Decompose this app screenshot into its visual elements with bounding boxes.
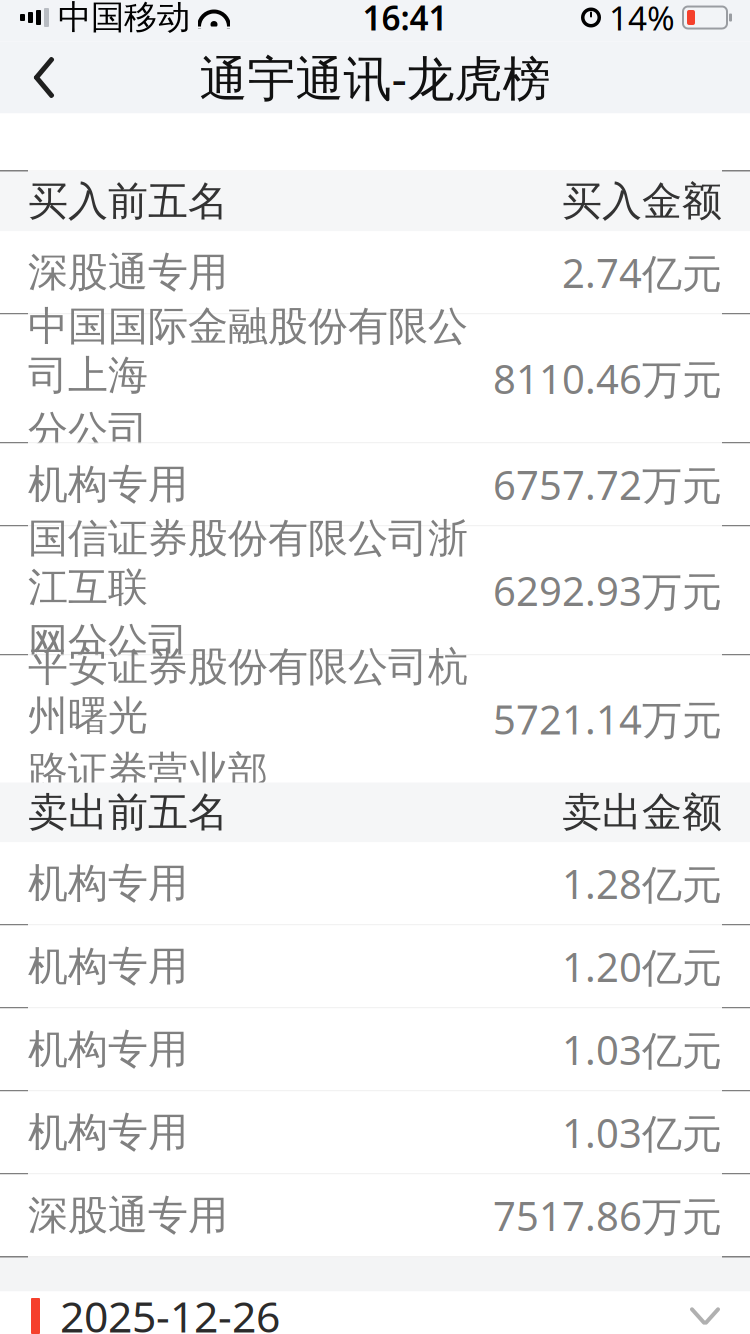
- button[interactable]: 国信证券股份有限公司浙江互联: [0, 526, 750, 654]
- button[interactable]: 平安证券股份有限公司杭州曙光: [0, 655, 750, 782]
- staticText: 深股通专用: [28, 248, 228, 297]
- staticText: 7517.86万元: [493, 1189, 722, 1242]
- staticText: 机构专用: [28, 942, 188, 991]
- staticText: 路证券营业部: [28, 747, 268, 796]
- button[interactable]: 机构专用: [0, 842, 750, 924]
- button[interactable]: 机构专用: [0, 925, 750, 1007]
- staticText: 1.03亿元: [562, 1023, 722, 1076]
- staticText: 16:41: [362, 0, 447, 40]
- staticText: 深股通专用: [28, 1191, 228, 1240]
- button[interactable]: 机构专用: [0, 443, 750, 525]
- staticText: 分公司: [28, 406, 148, 455]
- button[interactable]: 深股通专用: [0, 231, 750, 313]
- staticText: 通宇通讯-龙虎榜: [199, 46, 550, 109]
- staticText: 1.28亿元: [562, 857, 722, 910]
- staticText: 中国国际金融股份有限公司上海: [28, 302, 468, 400]
- staticText: 卖出前五名: [28, 788, 228, 837]
- staticText: 机构专用: [28, 1025, 188, 1074]
- button[interactable]: 返回: [9, 41, 79, 113]
- button[interactable]: 中国国际金融股份有限公司上海: [0, 314, 750, 442]
- button[interactable]: 机构专用: [0, 1008, 750, 1090]
- staticText: 买入金额: [562, 177, 722, 226]
- staticText: 机构专用: [28, 1108, 188, 1157]
- staticText: 1.20亿元: [562, 940, 722, 993]
- staticText: 14%: [609, 0, 675, 40]
- staticText: 中国移动: [58, 0, 190, 38]
- staticText: 卖出金额: [562, 788, 722, 837]
- staticText: 网分公司: [28, 618, 188, 667]
- staticText: 国信证券股份有限公司浙江互联: [28, 514, 468, 612]
- staticText: 机构专用: [28, 460, 188, 509]
- button[interactable]: 机构专用: [0, 1091, 750, 1173]
- staticText: 平安证券股份有限公司杭州曙光: [28, 642, 468, 741]
- staticText: 买入前五名: [28, 177, 228, 226]
- staticText: 6757.72万元: [493, 458, 722, 511]
- staticText: 8110.46万元: [493, 352, 722, 405]
- staticText: 1.03亿元: [562, 1106, 722, 1159]
- button[interactable]: 深股通专用: [0, 1174, 750, 1256]
- staticText: 6292.93万元: [493, 564, 722, 617]
- staticText: 2025-12-26: [60, 1288, 280, 1334]
- staticText: 5721.14万元: [493, 692, 722, 745]
- staticText: 2.74亿元: [562, 246, 722, 299]
- staticText: 机构专用: [28, 859, 188, 908]
- button[interactable]: 日期 2025-12-26: [0, 1291, 750, 1334]
